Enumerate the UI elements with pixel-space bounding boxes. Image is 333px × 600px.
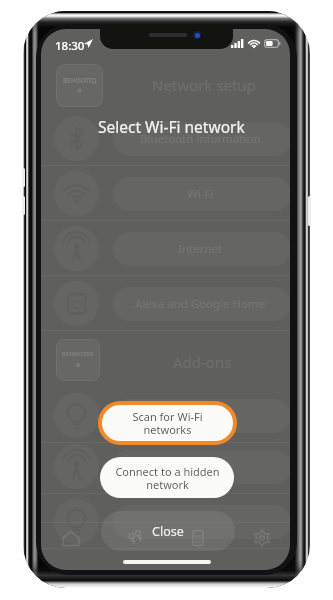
staticText: REHOOTIQ (62, 350, 94, 358)
button[interactable]: Close (101, 511, 235, 551)
staticText: Bluetooth information (140, 131, 261, 147)
button[interactable] (113, 450, 290, 484)
staticText: Close (152, 523, 184, 540)
button[interactable]: Devices (113, 521, 157, 555)
button[interactable] (113, 505, 290, 539)
button[interactable]: Settings (240, 521, 284, 555)
staticText: Wi-Fi (187, 186, 214, 202)
button[interactable]: Logs (176, 521, 220, 555)
staticText: Connect to a hidden network (115, 464, 220, 492)
button[interactable]: Home (49, 521, 93, 555)
staticText: Add-ons (173, 352, 232, 372)
staticText: Select Wi-Fi network (98, 116, 245, 137)
staticText: Internet (178, 241, 223, 257)
button[interactable] (113, 399, 290, 433)
button[interactable]: Scan for Wi-Fi networks (98, 401, 237, 445)
button[interactable]: Bluetooth information (113, 122, 290, 156)
button[interactable]: Alexa and Google Home (113, 287, 290, 321)
staticText: 18:30 (55, 38, 85, 54)
staticText: Alexa and Google Home (135, 296, 266, 312)
staticText: Scan for Wi-Fi networks (132, 409, 203, 437)
staticText: REHOOTIQ (63, 76, 97, 85)
button[interactable]: Connect to a hidden network (100, 457, 234, 498)
staticText: Network setup (152, 75, 256, 95)
